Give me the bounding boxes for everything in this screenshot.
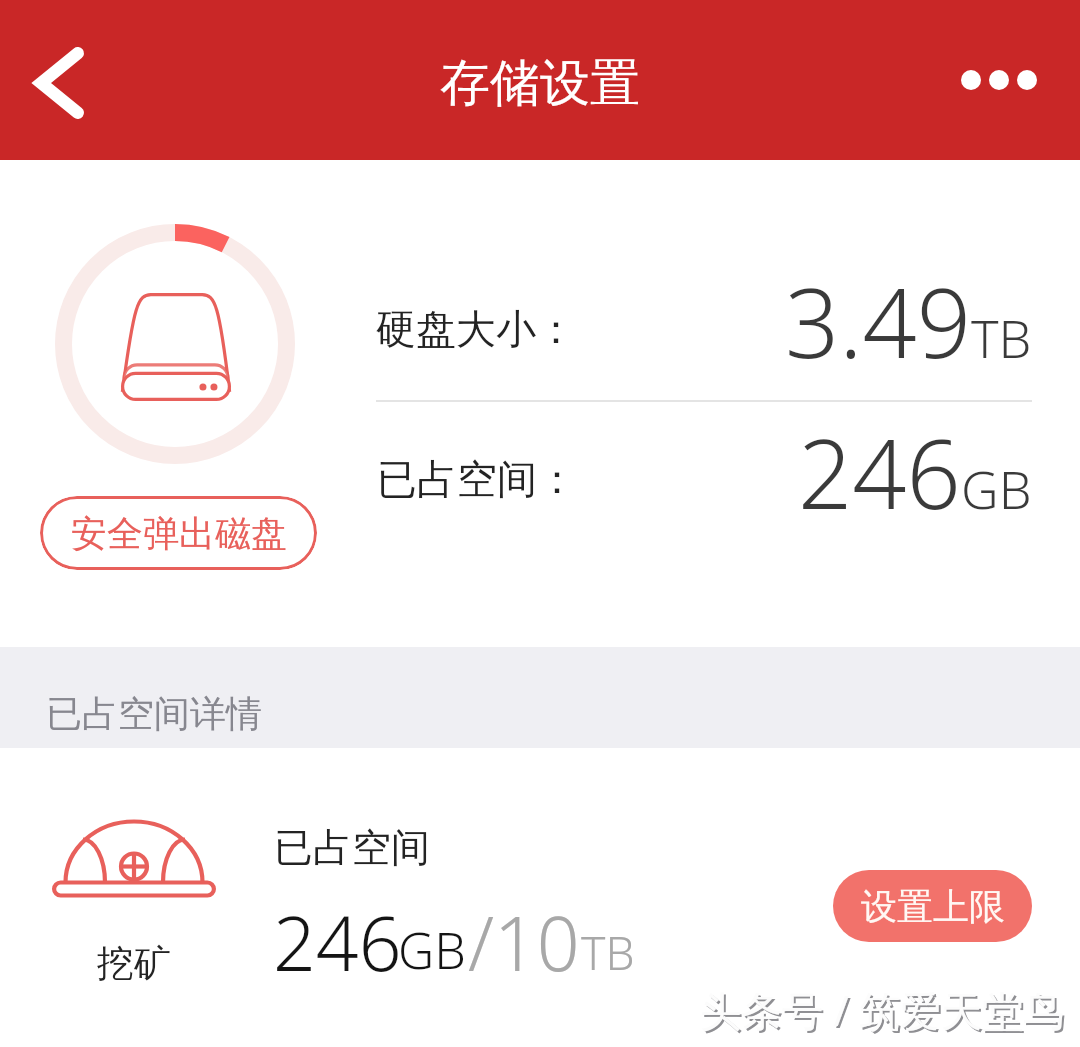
staticText: 246 <box>798 407 961 536</box>
staticText: 头条号 / 筑爱天堂鸟 <box>700 982 1065 1038</box>
staticText: 硬盘大小： <box>376 304 576 354</box>
staticText: GB <box>398 916 466 984</box>
staticText: 3.49 <box>785 256 971 385</box>
staticText: GB <box>961 453 1032 524</box>
staticText: 挖矿 <box>97 940 171 987</box>
staticText: 246 <box>273 891 402 993</box>
button[interactable]: 设置上限 <box>833 870 1032 942</box>
staticText: 设置上限 <box>861 884 1005 929</box>
button[interactable]: More options <box>930 36 1060 124</box>
staticText: 10 <box>494 891 580 993</box>
staticText: 安全弹出磁盘 <box>71 511 287 556</box>
staticText: 头条号 / 筑爱天堂鸟 <box>702 984 1067 1040</box>
staticText: 存储设置 <box>440 52 640 115</box>
staticText: TB <box>581 921 635 984</box>
staticText: 已占空间： <box>377 454 577 504</box>
staticText: TB <box>971 302 1032 373</box>
staticText: 已占空间详情 <box>46 691 262 736</box>
staticText: 已占空间 <box>274 823 430 872</box>
button[interactable]: Back <box>11 35 107 131</box>
staticText: / <box>468 891 495 993</box>
button[interactable]: 安全弹出磁盘 <box>40 496 317 570</box>
